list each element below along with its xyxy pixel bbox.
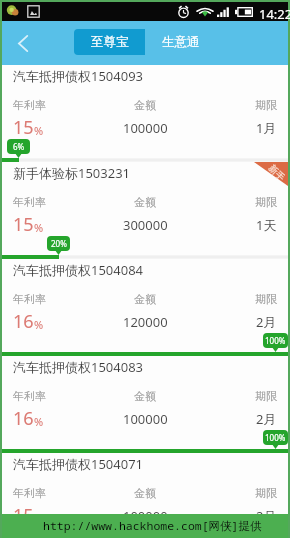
staticText: 期限	[255, 98, 277, 112]
staticText: 新手	[267, 162, 287, 183]
staticText: 6%	[13, 141, 25, 152]
staticText: 年利率	[13, 486, 46, 500]
staticText: 100000	[123, 410, 168, 428]
staticText: 20%	[51, 238, 67, 249]
staticText: 2月	[256, 507, 277, 514]
staticText: 年利率	[13, 98, 46, 112]
staticText: 期限	[255, 389, 277, 403]
staticText: 金额	[134, 98, 156, 112]
staticText: 15	[13, 503, 34, 514]
staticText: 期限	[255, 486, 277, 500]
staticText: %	[34, 220, 44, 235]
staticText: 至尊宝	[91, 34, 129, 50]
button[interactable]: 汽车抵押债权1504093	[2, 65, 288, 162]
staticText: 汽车抵押债权1504071	[13, 455, 144, 473]
staticText: 金额	[134, 389, 156, 403]
staticText: 2月	[256, 313, 277, 331]
staticText: 新手体验标1503231	[13, 164, 131, 182]
staticText: 100%	[265, 432, 286, 443]
staticText: %	[34, 317, 44, 332]
staticText: 生意通	[162, 34, 200, 50]
staticText: 1月	[256, 119, 277, 137]
button[interactable]: 汽车抵押债权1504083	[2, 356, 288, 453]
staticText: 汽车抵押债权1504093	[13, 67, 144, 85]
button[interactable]: 汽车抵押债权1504084	[2, 259, 288, 356]
staticText: 金额	[134, 486, 156, 500]
staticText: 年利率	[13, 195, 46, 209]
staticText: 15	[13, 212, 34, 237]
staticText: 120000	[123, 313, 168, 331]
staticText: %	[34, 414, 44, 429]
button[interactable]: Back	[2, 22, 44, 64]
staticText: 期限	[255, 292, 277, 306]
staticText: 金额	[134, 292, 156, 306]
staticText: 16	[13, 406, 34, 431]
button[interactable]: 生意通	[145, 29, 216, 55]
staticText: 期限	[255, 195, 277, 209]
staticText: %	[34, 123, 44, 138]
staticText: http://www.hackhome.com[网侠]提供	[43, 518, 262, 534]
staticText: 金额	[134, 195, 156, 209]
staticText: 年利率	[13, 292, 46, 306]
button[interactable]: 至尊宝	[74, 29, 145, 55]
staticText: 100000	[123, 119, 168, 137]
staticText: 16	[13, 309, 34, 334]
staticText: 14:22	[259, 5, 290, 23]
button[interactable]: 新手体验标1503231	[2, 162, 288, 259]
button[interactable]: 汽车抵押债权1504071	[2, 453, 288, 514]
staticText: 年利率	[13, 389, 46, 403]
staticText: 15	[13, 115, 34, 140]
staticText: 2月	[256, 410, 277, 428]
staticText: 1天	[256, 216, 277, 234]
staticText: 100000	[123, 507, 168, 514]
staticText: 300000	[123, 216, 168, 234]
staticText: 汽车抵押债权1504083	[13, 358, 144, 376]
staticText: 100%	[265, 335, 286, 346]
staticText: 汽车抵押债权1504084	[13, 261, 144, 279]
